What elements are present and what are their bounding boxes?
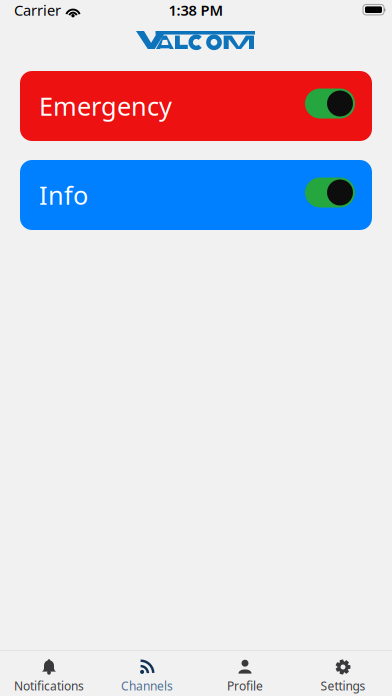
button[interactable]: Settings — [294, 651, 392, 696]
staticText: Profile — [227, 678, 263, 694]
button[interactable]: Notifications — [0, 651, 98, 696]
button[interactable]: Channels — [98, 651, 196, 696]
staticText: Info — [39, 178, 88, 212]
button[interactable]: Profile — [196, 651, 294, 696]
staticText: 1:38 PM — [168, 0, 223, 20]
staticText: Emergency — [39, 89, 172, 123]
staticText: Notifications — [14, 678, 84, 694]
button[interactable]: Info — [20, 160, 372, 230]
staticText: Carrier — [14, 0, 61, 20]
staticText: Channels — [121, 678, 173, 694]
staticText: Settings — [320, 678, 365, 694]
button[interactable]: Emergency — [20, 71, 372, 141]
